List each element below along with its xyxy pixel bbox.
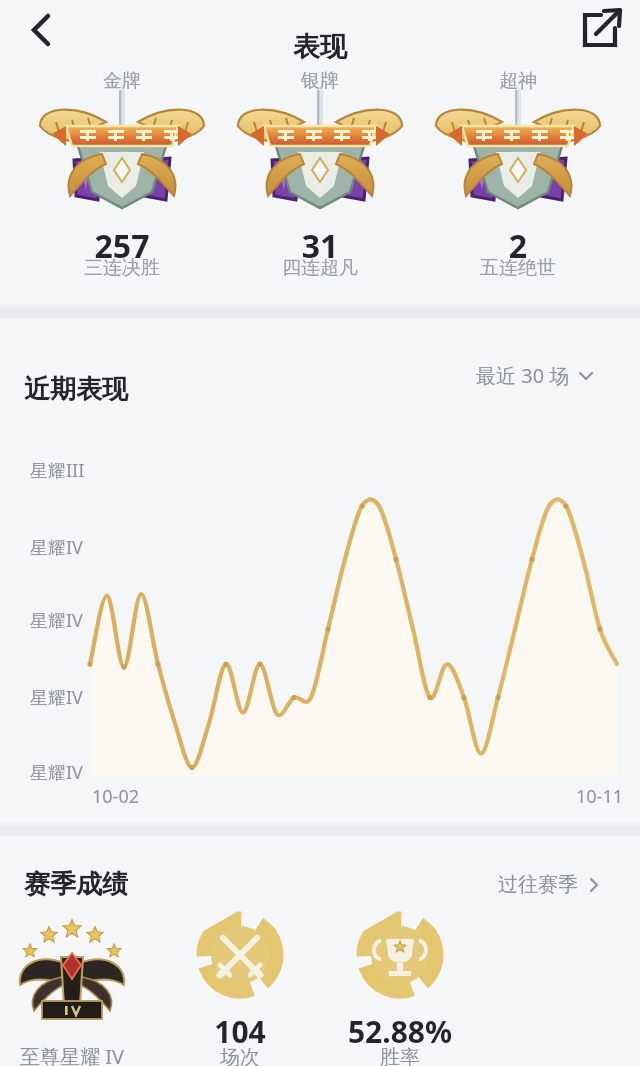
button[interactable] [222, 96, 418, 266]
staticText: 52.88% [240, 1011, 560, 1052]
staticText: 星耀IV [30, 685, 83, 710]
staticText: 10-11 [576, 784, 623, 809]
staticText: 金牌 [0, 69, 282, 93]
staticText: 星耀IV [30, 608, 83, 633]
staticText: 胜率 [240, 1045, 560, 1066]
button[interactable]: Share [570, 4, 628, 56]
staticText: 四连超凡 [160, 256, 480, 280]
staticText: 赛季成绩 [24, 868, 128, 901]
staticText: 表现 [160, 30, 480, 64]
staticText: 星耀IV [30, 535, 83, 560]
staticText: 三连决胜 [0, 256, 282, 280]
staticText: 最近 30 场 [476, 362, 570, 389]
staticText: 星耀III [30, 458, 85, 483]
button[interactable]: 过往赛季 [492, 868, 608, 901]
button[interactable] [420, 96, 616, 266]
staticText: 五连绝世 [358, 256, 640, 280]
staticText: 银牌 [160, 69, 480, 93]
staticText: 超神 [358, 69, 640, 93]
staticText: 场次 [80, 1045, 400, 1066]
staticText: 近期表现 [24, 373, 128, 406]
button[interactable]: 最近 30 场 [470, 358, 600, 393]
staticText: 2 [358, 224, 640, 268]
staticText: 104 [80, 1011, 400, 1052]
staticText: 257 [0, 224, 282, 268]
staticText: 31 [160, 224, 480, 268]
staticText: 至尊星耀 IV [0, 1043, 232, 1066]
staticText: 星耀IV [30, 760, 83, 785]
button[interactable] [24, 96, 220, 266]
staticText: 过往赛季 [498, 872, 578, 897]
button[interactable]: Back [8, 4, 72, 56]
staticText: 10-02 [92, 784, 139, 809]
